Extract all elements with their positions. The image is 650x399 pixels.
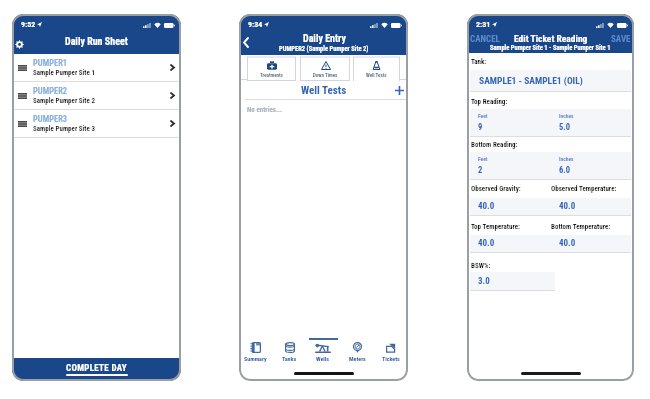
staticText: Summary — [244, 355, 267, 362]
button[interactable]: PUMPER3 — [12, 110, 181, 138]
staticText: COMPLETE DAY — [66, 363, 127, 374]
staticText: Well Tests — [301, 84, 347, 97]
staticText: Feet — [478, 156, 488, 162]
button[interactable]: PUMPER2 — [12, 82, 181, 110]
button[interactable]: Treatments — [247, 57, 296, 81]
button[interactable]: Tickets — [374, 338, 408, 364]
button[interactable]: PUMPER1 — [12, 54, 181, 82]
staticText: PUMPER2 — [33, 86, 68, 96]
staticText: Tank: — [471, 58, 487, 66]
staticText: Tickets — [382, 355, 400, 362]
staticText: 40.0 — [478, 201, 550, 212]
staticText: BSW%: — [471, 262, 491, 270]
staticText: 9 — [478, 122, 483, 132]
staticText: PUMPER2 (Sample Pumper Site 2) — [279, 45, 369, 53]
staticText: Inches — [559, 113, 574, 119]
staticText: PUMPER1 — [33, 58, 68, 68]
staticText: Observed Gravity: — [471, 185, 551, 193]
staticText: 9:34 — [248, 20, 263, 29]
staticText: Observed Temperature: — [551, 185, 631, 193]
staticText: 3.0 — [478, 276, 490, 287]
button[interactable]: SAMPLE1 - SAMPLE1 (OIL) — [470, 70, 631, 91]
button[interactable]: Meters — [340, 338, 374, 364]
staticText: Sample Pumper Site 1 - Sample Pumper Sit… — [490, 44, 611, 52]
button[interactable]: CANCEL — [470, 34, 500, 45]
staticText: Sample Pumper Site 3 — [33, 125, 96, 133]
button[interactable]: Settings — [12, 36, 27, 52]
staticText: 2 — [478, 165, 483, 175]
staticText: SAMPLE1 - SAMPLE1 (OIL) — [479, 75, 583, 86]
button[interactable]: Well Tests — [353, 57, 400, 81]
button[interactable]: Add — [393, 84, 405, 96]
staticText: Edit Ticket Reading — [514, 33, 588, 44]
staticText: Bottom Reading: — [471, 141, 518, 149]
staticText: Tanks — [282, 355, 297, 362]
staticText: Inches — [559, 156, 574, 162]
staticText: 5.0 — [559, 122, 571, 132]
button[interactable]: Summary — [239, 338, 272, 364]
staticText: Treatments — [260, 72, 283, 78]
staticText: Feet — [478, 113, 488, 119]
staticText: 6.0 — [559, 165, 571, 175]
staticText: Sample Pumper Site 1 — [33, 69, 96, 77]
staticText: 40.0 — [478, 238, 550, 249]
staticText: No entries... — [247, 106, 283, 114]
button[interactable]: SAVE — [611, 34, 631, 45]
staticText: Sample Pumper Site 2 — [33, 97, 96, 105]
staticText: 9:52 — [21, 20, 36, 29]
staticText: Bottom Temperature: — [551, 223, 631, 231]
button[interactable]: Wells — [306, 338, 340, 364]
button[interactable]: 3.0 — [470, 272, 555, 290]
staticText: Top Reading: — [471, 98, 508, 106]
staticText: 40.0 — [559, 238, 631, 249]
button[interactable]: COMPLETE DAY — [12, 358, 181, 381]
staticText: Down Times — [313, 72, 338, 78]
staticText: Meters — [349, 355, 366, 362]
staticText: Daily Run Sheet — [65, 36, 128, 48]
staticText: 2:31 — [476, 20, 491, 29]
button[interactable]: Tanks — [272, 338, 306, 364]
staticText: Top Temperature: — [471, 223, 551, 231]
staticText: Wells — [316, 355, 330, 362]
staticText: Well Tests — [366, 72, 387, 78]
button[interactable]: Back — [240, 36, 252, 48]
staticText: 40.0 — [559, 201, 631, 212]
staticText: Daily Entry — [303, 33, 346, 45]
button[interactable]: Down Times — [300, 57, 350, 81]
staticText: PUMPER3 — [33, 114, 68, 124]
